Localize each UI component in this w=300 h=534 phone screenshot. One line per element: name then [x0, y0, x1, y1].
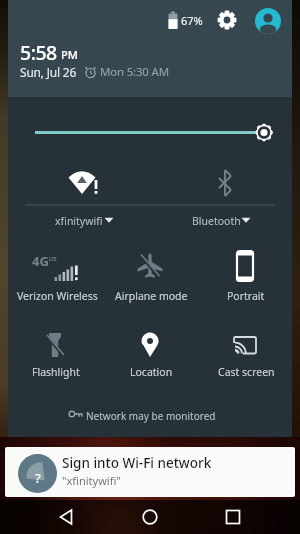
staticText: Flashlight — [32, 365, 80, 379]
staticText: 5:58 — [20, 39, 57, 66]
staticText: 4G — [32, 252, 49, 270]
button[interactable]: ? — [5, 447, 295, 497]
button[interactable] — [194, 237, 282, 312]
staticText: Network may be monitored — [86, 409, 216, 423]
staticText: Mon 5:30 AM — [100, 64, 169, 80]
staticText: Sign into Wi-Fi network — [62, 454, 212, 472]
button[interactable] — [32, 157, 132, 237]
button[interactable] — [168, 157, 268, 237]
staticText: Verizon Wireless — [17, 289, 98, 303]
staticText: "xfinitywifi" — [62, 473, 121, 488]
staticText: Airplane mode — [115, 289, 188, 303]
staticText: PM — [61, 47, 78, 62]
staticText: Bluetooth — [192, 214, 241, 228]
button[interactable] — [58, 402, 242, 428]
staticText: Portrait — [227, 289, 265, 303]
staticText: ? — [35, 469, 41, 487]
button[interactable] — [18, 315, 106, 390]
staticText: Sun, Jul 26 — [20, 64, 77, 80]
button[interactable] — [255, 8, 281, 34]
staticText: xfinitywifi — [55, 214, 103, 228]
button[interactable] — [138, 505, 162, 529]
button[interactable] — [18, 237, 106, 312]
button[interactable] — [221, 505, 245, 529]
staticText: Location — [130, 365, 173, 379]
button[interactable] — [106, 315, 194, 390]
button[interactable] — [194, 315, 282, 390]
button[interactable] — [106, 237, 194, 312]
staticText: LTE — [49, 256, 57, 262]
staticText: 67% — [181, 13, 203, 28]
button[interactable] — [54, 505, 78, 529]
button[interactable] — [216, 9, 238, 31]
staticText: Cast screen — [218, 365, 275, 379]
